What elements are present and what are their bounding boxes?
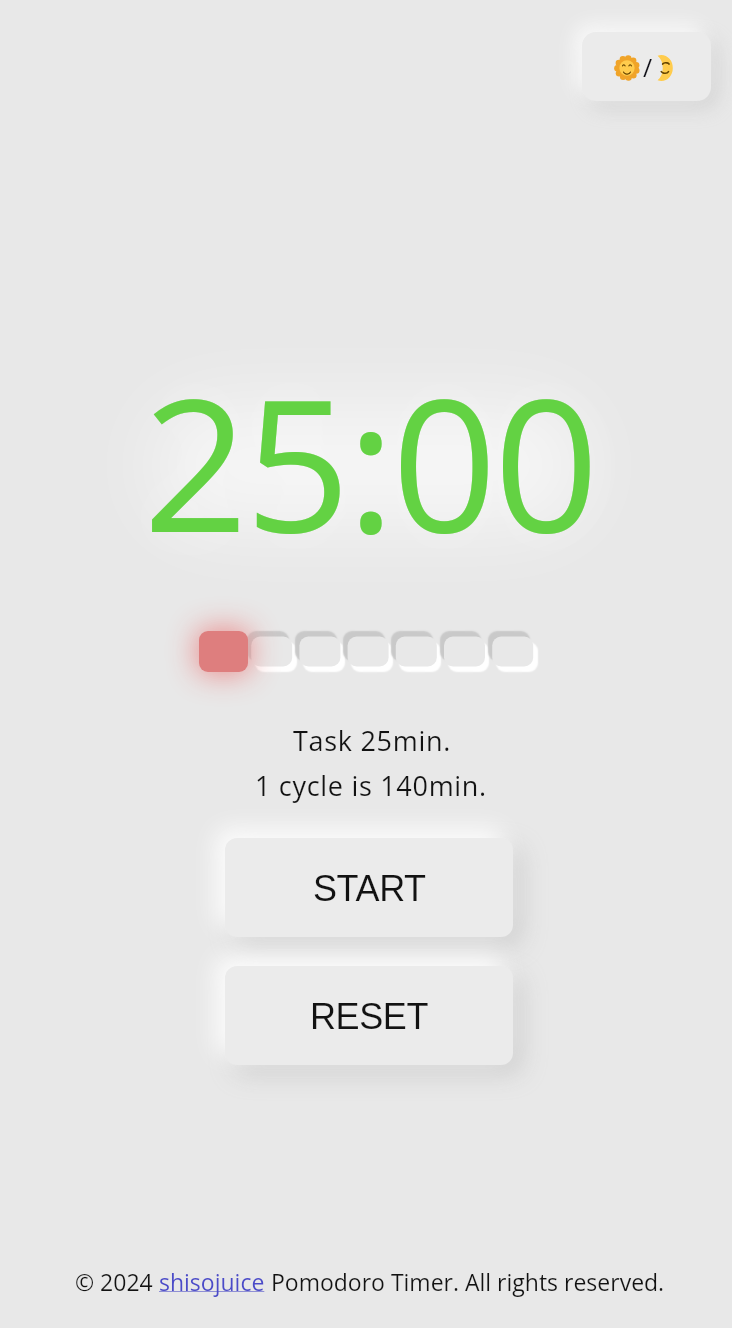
staticText: 1 cycle is 140min. (255, 767, 487, 804)
button[interactable]: RESET (225, 966, 513, 1065)
button[interactable]: shisojuice (159, 1266, 265, 1297)
staticText: Task 25min. (293, 722, 451, 759)
button[interactable]: Toggle light and dark theme (582, 32, 711, 101)
staticText: Pomodoro Timer. All rights reserved. (265, 1266, 665, 1297)
staticText: START (313, 868, 426, 908)
staticText: © 2024 (75, 1266, 159, 1297)
button[interactable]: START (225, 838, 513, 937)
staticText: / (643, 50, 653, 84)
staticText: RESET (310, 996, 429, 1036)
staticText: 25:00 (143, 335, 596, 586)
